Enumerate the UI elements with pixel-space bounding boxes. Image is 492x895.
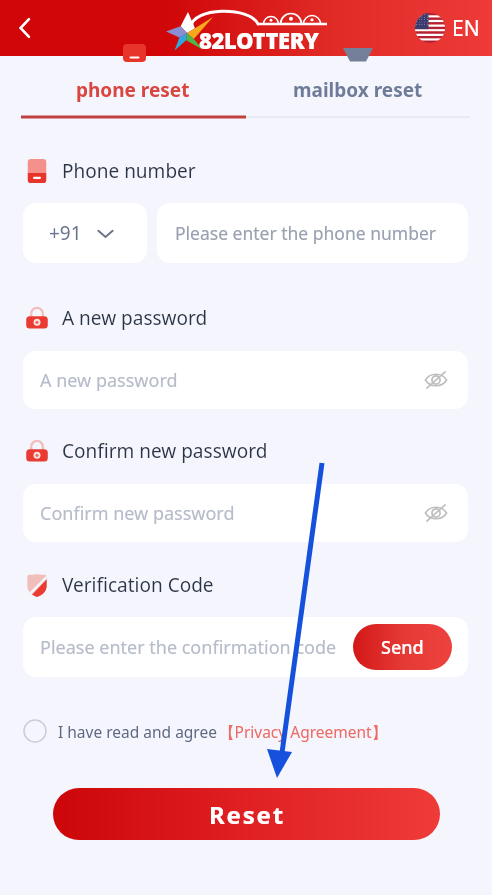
- staticText: 82LOTTERY: [199, 25, 319, 55]
- button[interactable]: Send: [353, 624, 452, 670]
- button[interactable]: mailbox reset: [245, 56, 470, 120]
- button[interactable]: phone reset: [21, 56, 245, 120]
- button[interactable]: Reset: [53, 788, 440, 840]
- staticText: Please enter the phone number: [175, 221, 437, 245]
- button[interactable]: Toggle password visibility: [419, 496, 453, 530]
- staticText: Confirm new password: [40, 501, 235, 526]
- staticText: +91: [49, 220, 82, 246]
- staticText: A new password: [62, 305, 208, 331]
- staticText: Confirm new password: [62, 438, 268, 464]
- staticText: Verification Code: [62, 572, 214, 598]
- button[interactable]: Please enter the phone number: [157, 203, 468, 263]
- staticText: mailbox reset: [293, 77, 423, 103]
- staticText: 【Privacy Agreement】: [219, 721, 388, 742]
- button[interactable]: A new password: [23, 351, 468, 409]
- button[interactable]: Toggle password visibility: [419, 363, 453, 397]
- staticText: Reset: [209, 798, 285, 831]
- staticText: I have read and agree: [58, 721, 217, 742]
- button[interactable]: Confirm new password: [23, 484, 468, 542]
- staticText: Please enter the confirmation code: [40, 635, 337, 660]
- staticText: A new password: [40, 368, 178, 393]
- button[interactable]: Agree checkbox: [23, 719, 47, 743]
- staticText: EN: [452, 14, 480, 43]
- button[interactable]: Back: [3, 6, 47, 50]
- button[interactable]: +91: [23, 203, 147, 263]
- button[interactable]: EN: [415, 13, 480, 43]
- staticText: phone reset: [76, 77, 190, 103]
- staticText: Send: [381, 635, 424, 660]
- staticText: Phone number: [62, 158, 196, 184]
